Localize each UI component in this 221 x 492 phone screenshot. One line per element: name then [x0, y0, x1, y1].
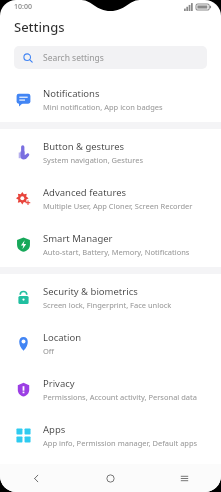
button[interactable]: Recent apps: [147, 464, 221, 492]
button[interactable]: Security & biometrics: [0, 274, 221, 320]
button[interactable]: Back: [0, 464, 73, 492]
button[interactable]: Search settings: [14, 46, 207, 69]
staticText: Search settings: [43, 52, 104, 64]
staticText: Location: [43, 331, 82, 344]
staticText: Auto-start, Battery, Memory, Notificatio…: [43, 247, 190, 257]
staticText: Settings: [14, 18, 65, 36]
staticText: Security & biometrics: [43, 285, 138, 298]
button[interactable]: Privacy: [0, 366, 221, 412]
staticText: Advanced features: [43, 186, 127, 199]
staticText: 10:00: [14, 2, 32, 12]
staticText: Off: [43, 346, 55, 356]
button[interactable]: Location: [0, 320, 221, 366]
staticText: Screen lock, Fingerprint, Face unlock: [43, 300, 172, 310]
button[interactable]: Advanced features: [0, 175, 221, 221]
button[interactable]: Smart Manager: [0, 221, 221, 267]
staticText: Privacy: [43, 377, 75, 390]
button[interactable]: Home: [73, 464, 147, 492]
staticText: Multiple User, App Cloner, Screen Record…: [43, 201, 193, 211]
button[interactable]: Apps: [0, 412, 221, 458]
button[interactable]: Notifications: [0, 76, 221, 122]
staticText: Mini notification, App icon badges: [43, 102, 163, 112]
staticText: Apps: [43, 423, 66, 436]
staticText: System navigation, Gestures: [43, 155, 144, 165]
staticText: Permissions, Account activity, Personal …: [43, 392, 197, 402]
button[interactable]: Button & gestures: [0, 129, 221, 175]
staticText: App info, Permission manager, Default ap…: [43, 438, 198, 448]
staticText: Notifications: [43, 87, 100, 100]
staticText: Smart Manager: [43, 232, 113, 245]
staticText: Button & gestures: [43, 140, 125, 153]
